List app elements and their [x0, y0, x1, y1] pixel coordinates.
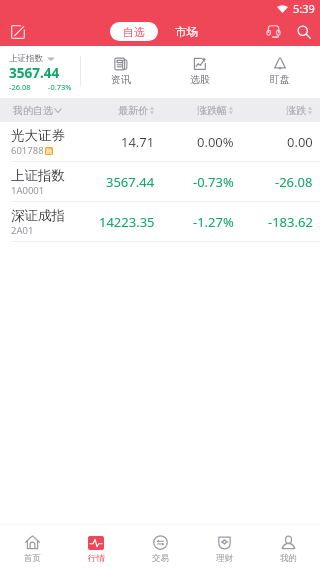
- staticText: 5:39: [293, 1, 315, 16]
- button[interactable]: 市场: [166, 22, 206, 41]
- staticText: 盯盘: [270, 73, 290, 86]
- staticText: 3567.44: [9, 64, 60, 82]
- button[interactable]: 深证成指: [0, 202, 320, 242]
- button[interactable]: 选股: [160, 46, 240, 98]
- staticText: -0.73%: [48, 82, 72, 92]
- button[interactable]: Search: [288, 17, 320, 46]
- button[interactable]: 我的: [256, 525, 320, 568]
- staticText: 自选: [123, 25, 145, 39]
- staticText: -26.08: [9, 82, 48, 92]
- button[interactable]: 涨跌: [241, 98, 320, 122]
- button[interactable]: 盯盘: [240, 46, 320, 98]
- button[interactable]: 涨跌幅: [162, 98, 241, 122]
- staticText: 我的: [280, 553, 297, 564]
- staticText: 14223.35: [99, 213, 155, 231]
- button[interactable]: Customer service: [258, 17, 288, 46]
- staticText: 0.00%: [197, 133, 234, 151]
- staticText: 融: [46, 148, 52, 155]
- staticText: 涨跌幅: [197, 104, 227, 117]
- button[interactable]: 上证指数: [0, 46, 81, 98]
- staticText: -0.73%: [193, 173, 234, 191]
- staticText: 光大证券: [11, 127, 65, 144]
- staticText: 交易: [152, 553, 169, 564]
- staticText: 资讯: [111, 73, 131, 86]
- staticText: 14.71: [121, 133, 155, 151]
- staticText: 我的自选: [13, 104, 53, 117]
- staticText: -183.62: [268, 213, 313, 231]
- staticText: 上证指数: [11, 167, 65, 184]
- staticText: 最新价: [118, 104, 148, 117]
- staticText: 0.00: [287, 133, 313, 151]
- staticText: 选股: [190, 73, 210, 86]
- staticText: 上证指数: [9, 53, 43, 64]
- staticText: 市场: [175, 25, 198, 39]
- staticText: 理财: [216, 553, 233, 564]
- staticText: -26.08: [275, 173, 313, 191]
- staticText: 行情: [88, 553, 105, 564]
- staticText: 2A01: [11, 224, 34, 237]
- staticText: 601788: [11, 144, 44, 157]
- button[interactable]: 交易: [128, 525, 192, 568]
- button[interactable]: 光大证券: [0, 122, 320, 162]
- button[interactable]: 资讯: [81, 46, 160, 98]
- staticText: 1A0001: [11, 184, 45, 197]
- button[interactable]: 首页: [0, 525, 64, 568]
- button[interactable]: 行情: [64, 525, 128, 568]
- staticText: 涨跌: [286, 104, 306, 117]
- button[interactable]: Edit watchlist: [0, 17, 36, 46]
- button[interactable]: 自选: [110, 22, 158, 41]
- staticText: -1.27%: [193, 213, 234, 231]
- button[interactable]: 最新价: [84, 98, 162, 122]
- button[interactable]: 上证指数: [0, 162, 320, 202]
- button[interactable]: 理财: [192, 525, 256, 568]
- staticText: 首页: [24, 553, 41, 564]
- staticText: 深证成指: [11, 207, 65, 224]
- staticText: 3567.44: [106, 173, 155, 191]
- button[interactable]: 我的自选: [0, 98, 84, 122]
